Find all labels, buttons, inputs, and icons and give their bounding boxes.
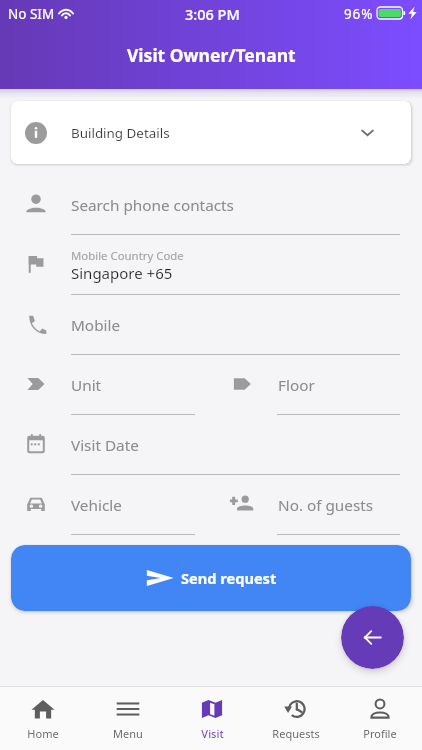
staticText: No SIM [8,5,55,23]
button[interactable]: Menu [85,687,170,750]
button[interactable]: Profile [338,687,422,750]
staticText: No. of guests [278,495,374,516]
button[interactable]: Send request [11,545,411,611]
button[interactable]: Mobile [0,294,422,354]
button[interactable]: Back [341,606,404,669]
staticText: Menu [113,726,143,741]
staticText: Home [27,726,59,741]
staticText: Search phone contacts [71,195,234,216]
button[interactable]: Building Details [11,101,411,164]
staticText: Building Details [71,124,170,142]
staticText: Singapore +65 [71,263,173,283]
staticText: Unit [71,375,102,396]
button[interactable]: Requests [254,687,338,750]
button[interactable]: Unit [0,354,211,414]
staticText: Send request [181,568,277,588]
staticText: Profile [363,726,397,741]
staticText: Visit [201,726,224,741]
staticText: Requests [272,726,320,741]
staticText: Mobile Country Code [71,248,184,264]
staticText: Vehicle [71,495,122,516]
staticText: Visit Date [71,435,139,456]
button[interactable]: Visit [170,687,254,750]
button[interactable]: No. of guests [211,474,422,534]
staticText: 3:06 PM [185,4,240,24]
button[interactable]: Vehicle [0,474,211,534]
button[interactable]: Search phone contacts [0,174,422,234]
button[interactable]: Home [0,687,85,750]
staticText: Floor [278,375,315,396]
staticText: Visit Owner/Tenant [127,43,296,67]
staticText: Mobile [71,315,121,336]
staticText: 96% [344,5,374,23]
button[interactable]: Floor [211,354,422,414]
button[interactable]: Mobile Country Code [0,234,422,294]
button[interactable]: Visit Date [0,414,422,474]
